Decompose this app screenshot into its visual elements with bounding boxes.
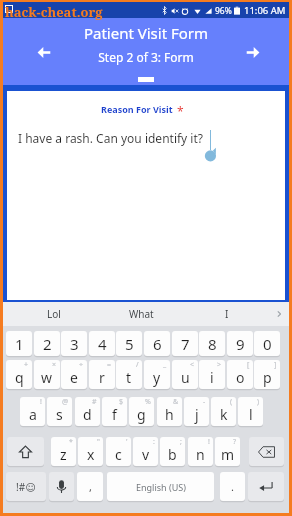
staticText: ! [40, 397, 42, 407]
button[interactable]: Shift [7, 437, 44, 466]
staticText: e [70, 368, 78, 387]
button[interactable]: Voice input [49, 472, 74, 501]
button[interactable]: u [172, 360, 198, 389]
button[interactable]: What [99, 302, 184, 326]
staticText: < [190, 360, 195, 370]
staticText: Step 2 of 3: Form [3, 49, 289, 65]
staticText: + [24, 360, 29, 370]
button[interactable]: a [20, 397, 45, 426]
button[interactable]: d [75, 397, 100, 426]
button[interactable]: f [102, 397, 127, 426]
staticText: - [203, 397, 206, 407]
staticText: " [97, 437, 100, 447]
button[interactable]: z [51, 437, 76, 466]
button[interactable]: Backspace [249, 437, 284, 466]
staticText: = [107, 360, 112, 370]
button[interactable]: Previous step [32, 40, 56, 64]
staticText: × [52, 360, 57, 370]
staticText: b [168, 445, 177, 464]
button[interactable]: English (US) [107, 472, 214, 501]
button[interactable]: o [227, 360, 253, 389]
staticText: z [60, 445, 67, 464]
button[interactable]: Lol [11, 302, 96, 326]
staticText: j [195, 405, 199, 424]
button[interactable]: j [184, 397, 209, 426]
button[interactable]: y [144, 360, 170, 389]
button[interactable]: s [47, 397, 72, 426]
staticText: ( [230, 397, 233, 407]
staticText: d [83, 405, 92, 424]
staticText: % [145, 397, 151, 407]
staticText: I have a rash. Can you identify it? [18, 130, 203, 146]
staticText: ] [274, 360, 277, 370]
staticText: _ [163, 360, 167, 370]
button[interactable]: k [211, 397, 236, 426]
button[interactable]: 5 [116, 331, 142, 356]
staticText: ! [208, 437, 210, 447]
button[interactable]: 2 [34, 331, 60, 356]
staticText: , [89, 479, 92, 494]
button[interactable]: I [187, 302, 267, 326]
staticText: 2 [43, 334, 52, 354]
staticText: k [220, 405, 228, 424]
button[interactable]: v [133, 437, 158, 466]
button[interactable]: q [6, 360, 32, 389]
button[interactable]: r [89, 360, 115, 389]
staticText: w [41, 368, 53, 387]
staticText: ) [257, 397, 260, 407]
staticText: ? [233, 437, 237, 447]
button[interactable]: 7 [172, 331, 198, 356]
staticText: r [99, 368, 105, 387]
button[interactable]: More suggestions [269, 302, 289, 326]
button[interactable]: 4 [89, 331, 115, 356]
staticText: : [153, 437, 155, 447]
staticText: h [165, 405, 174, 424]
staticText: f [112, 405, 117, 424]
button[interactable]: x [78, 437, 103, 466]
button[interactable]: , [77, 472, 103, 501]
staticText: !#☺ [16, 480, 36, 494]
button[interactable]: w [34, 360, 60, 389]
button[interactable]: n [188, 437, 213, 466]
staticText: 4 [98, 334, 107, 354]
button[interactable]: h [157, 397, 182, 426]
staticText: * [69, 437, 73, 447]
button[interactable]: p [254, 360, 280, 389]
staticText: @ [62, 397, 69, 407]
staticText: y [153, 368, 161, 387]
staticText: x [87, 445, 95, 464]
button[interactable]: 3 [61, 331, 87, 356]
staticText: # [92, 397, 97, 407]
staticText: English (US) [136, 481, 186, 493]
button[interactable]: l [238, 397, 263, 426]
button[interactable]: c [106, 437, 131, 466]
button[interactable]: e [61, 360, 87, 389]
button[interactable]: . [220, 472, 245, 501]
button[interactable]: Next step [241, 40, 265, 64]
staticText: ; [180, 437, 182, 447]
button[interactable]: 8 [199, 331, 225, 356]
staticText: s [56, 405, 63, 424]
button[interactable]: t [116, 360, 142, 389]
button[interactable]: 6 [144, 331, 170, 356]
button[interactable]: 0 [254, 331, 280, 356]
staticText: ÷ [79, 360, 84, 370]
staticText: u [181, 368, 190, 387]
button[interactable]: i [199, 360, 225, 389]
staticText: o [236, 368, 245, 387]
staticText: 1 [15, 334, 24, 354]
staticText: & [173, 397, 179, 407]
button[interactable]: g [129, 397, 154, 426]
button[interactable]: !#☺ [6, 472, 46, 501]
button[interactable]: 9 [227, 331, 253, 356]
button[interactable]: b [160, 437, 185, 466]
staticText: hack-cheat.org [5, 3, 103, 21]
button[interactable]: m [215, 437, 240, 466]
staticText: m [221, 445, 235, 464]
staticText: 96% [215, 5, 232, 17]
button[interactable]: Enter [248, 472, 284, 501]
staticText: v [142, 445, 150, 464]
staticText: l [249, 405, 253, 424]
staticText: t [126, 368, 132, 387]
button[interactable]: 1 [6, 331, 32, 356]
